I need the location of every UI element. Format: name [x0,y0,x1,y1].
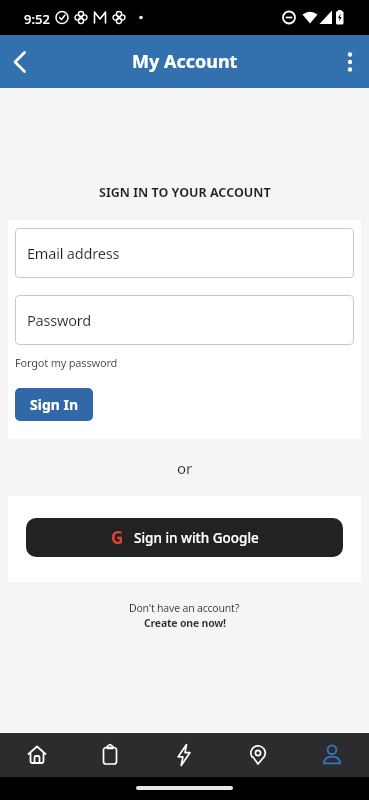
button[interactable]: Sign In [15,388,93,421]
button[interactable] [0,40,44,84]
staticText: Sign in with Google [134,529,259,547]
button[interactable]: Create one now! [144,616,226,630]
button[interactable] [295,733,369,777]
staticText: or [177,458,193,478]
button[interactable]: Email address [15,228,354,278]
staticText: Sign In [30,395,79,414]
button[interactable] [0,733,73,777]
button[interactable]: G [26,518,343,557]
staticText: Password [27,310,91,330]
staticText: G [111,526,124,549]
staticText: Don't have an account? [129,601,240,615]
button[interactable] [73,733,147,777]
button[interactable] [147,733,221,777]
staticText: Email address [27,243,120,263]
button[interactable] [221,733,295,777]
staticText: SIGN IN TO YOUR ACCOUNT [99,184,271,201]
button[interactable]: Forgot my password [15,355,118,370]
button[interactable]: Password [15,295,354,345]
staticText: 9:52 [24,10,50,28]
button[interactable] [329,42,369,82]
staticText: My Account [132,49,238,74]
